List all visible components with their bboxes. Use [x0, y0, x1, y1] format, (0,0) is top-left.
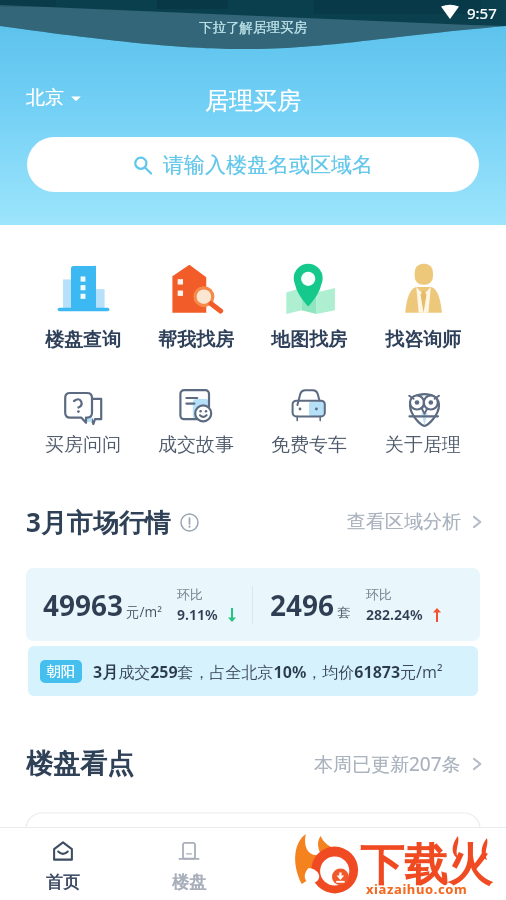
staticText: 49963	[43, 586, 124, 624]
staticText: 咨询	[299, 872, 333, 893]
button[interactable]: 咨询	[252, 828, 379, 900]
staticText: 关于居理	[385, 433, 461, 457]
staticText: 首页	[46, 872, 80, 893]
button[interactable]: 楼盘查询	[26, 260, 139, 352]
staticText: 环比	[366, 586, 392, 602]
button[interactable]: 北京	[26, 86, 81, 110]
staticText: 环比	[177, 586, 203, 602]
button[interactable]: 朝阳	[28, 646, 478, 696]
button[interactable]: 帮我找房	[139, 260, 252, 352]
staticText: 成交故事	[158, 433, 234, 457]
staticText: 楼盘看点	[26, 747, 134, 781]
button[interactable]: 地图找房	[252, 260, 366, 352]
button[interactable]: 我的	[379, 828, 506, 900]
staticText: 帮我找房	[158, 328, 234, 352]
staticText: 9:57	[467, 3, 497, 23]
button[interactable]: 本周已更新207条	[314, 751, 484, 777]
staticText: 282.24%	[366, 605, 423, 624]
staticText: 北京	[26, 86, 64, 110]
button[interactable]: 关于居理	[366, 389, 480, 457]
other: 说明	[180, 513, 199, 532]
staticText: 楼盘	[172, 872, 206, 893]
staticText: 2496	[270, 586, 335, 624]
staticText: 地图找房	[271, 328, 347, 352]
other: WiFi	[441, 5, 459, 19]
button[interactable]: 成交故事	[139, 389, 252, 457]
button[interactable]: 买房问问	[26, 389, 139, 457]
staticText: 元/m²	[126, 603, 162, 621]
staticText: 居理买房	[205, 86, 301, 116]
staticText: 楼盘查询	[45, 328, 121, 352]
staticText: 3月市场行情	[26, 504, 171, 540]
button[interactable]: 首页	[0, 828, 126, 900]
staticText: 9.11%	[177, 605, 218, 624]
button[interactable]	[26, 813, 480, 900]
staticText: 本周已更新207条	[314, 751, 461, 777]
staticText: 朝阳	[47, 663, 75, 681]
staticText: 下拉了解居理买房	[199, 19, 307, 36]
button[interactable]: 找咨询师	[366, 260, 480, 352]
staticText: 买房问问	[45, 433, 121, 457]
button[interactable]: 楼盘	[126, 828, 252, 900]
button[interactable]: 免费专车	[252, 389, 366, 457]
staticText: 找咨询师	[385, 328, 461, 352]
staticText: 免费专车	[271, 433, 347, 457]
staticText: 套	[337, 604, 351, 621]
staticText: 请输入楼盘名或区域名	[163, 152, 373, 178]
button[interactable]: 查看区域分析	[347, 510, 484, 534]
button[interactable]: 请输入楼盘名或区域名	[27, 137, 479, 192]
staticText: xiazaihuo.com	[366, 880, 468, 898]
staticText: 3月成交259套，占全北京10%，均价61873元/m²	[93, 661, 443, 683]
staticText: 查看区域分析	[347, 510, 461, 534]
staticText: 我的	[426, 872, 460, 893]
staticText: 下载火	[360, 838, 492, 893]
